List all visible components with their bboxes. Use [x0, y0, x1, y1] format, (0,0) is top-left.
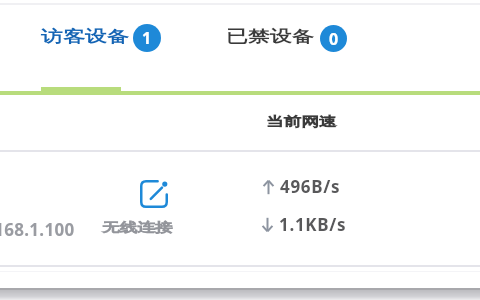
staticText: 1: [142, 27, 152, 49]
staticText: 1.1KB/s: [279, 213, 347, 236]
staticText: 496B/s: [280, 175, 341, 198]
button[interactable]: 已禁设备: [206, 8, 368, 80]
staticText: 无线连接: [102, 219, 173, 235]
staticText: 已禁设备: [226, 27, 314, 47]
staticText: 访客设备: [41, 27, 129, 47]
button[interactable]: 访客设备: [20, 8, 182, 80]
button[interactable]: Edit: [140, 180, 168, 208]
staticText: 0: [329, 28, 339, 50]
staticText: 192.168.1.100: [0, 218, 75, 241]
staticText: 当前网速: [266, 113, 337, 129]
